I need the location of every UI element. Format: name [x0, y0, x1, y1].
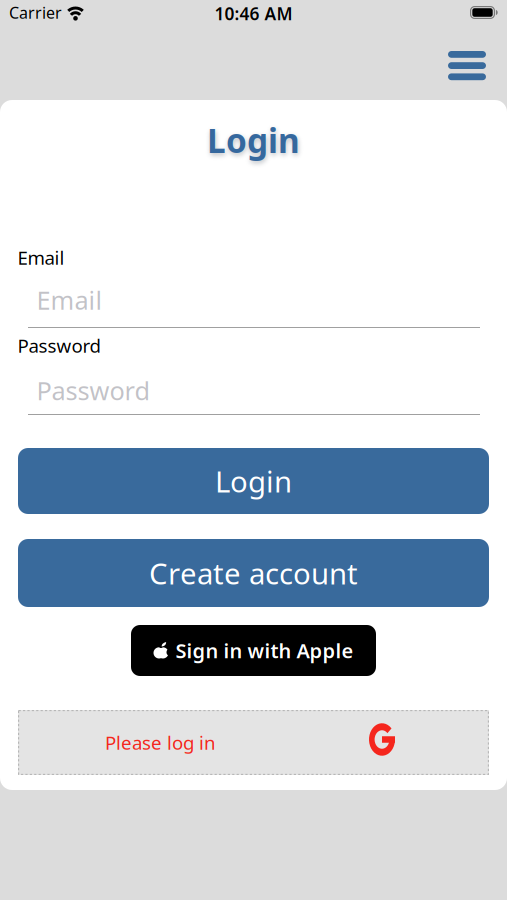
staticText: Password — [36, 373, 150, 407]
button[interactable]: Please log in — [18, 710, 489, 775]
staticText: Sign in with Apple — [175, 637, 353, 664]
button[interactable]: Login — [18, 448, 489, 514]
button[interactable]: Password — [28, 370, 480, 415]
staticText: Login — [215, 461, 292, 500]
button[interactable]: Menu — [444, 47, 490, 84]
staticText: Carrier — [9, 2, 62, 23]
staticText: Password — [17, 333, 100, 358]
button[interactable]: Create account — [18, 539, 489, 607]
staticText: Email — [36, 283, 102, 317]
staticText: 10:46 AM — [214, 2, 292, 25]
button[interactable]: Sign in with Apple — [131, 625, 376, 676]
staticText: Email — [17, 245, 64, 270]
staticText: Please log in — [105, 730, 216, 755]
button[interactable]: Email — [28, 280, 480, 328]
staticText: Create account — [149, 553, 358, 592]
staticText: Login — [207, 118, 300, 162]
